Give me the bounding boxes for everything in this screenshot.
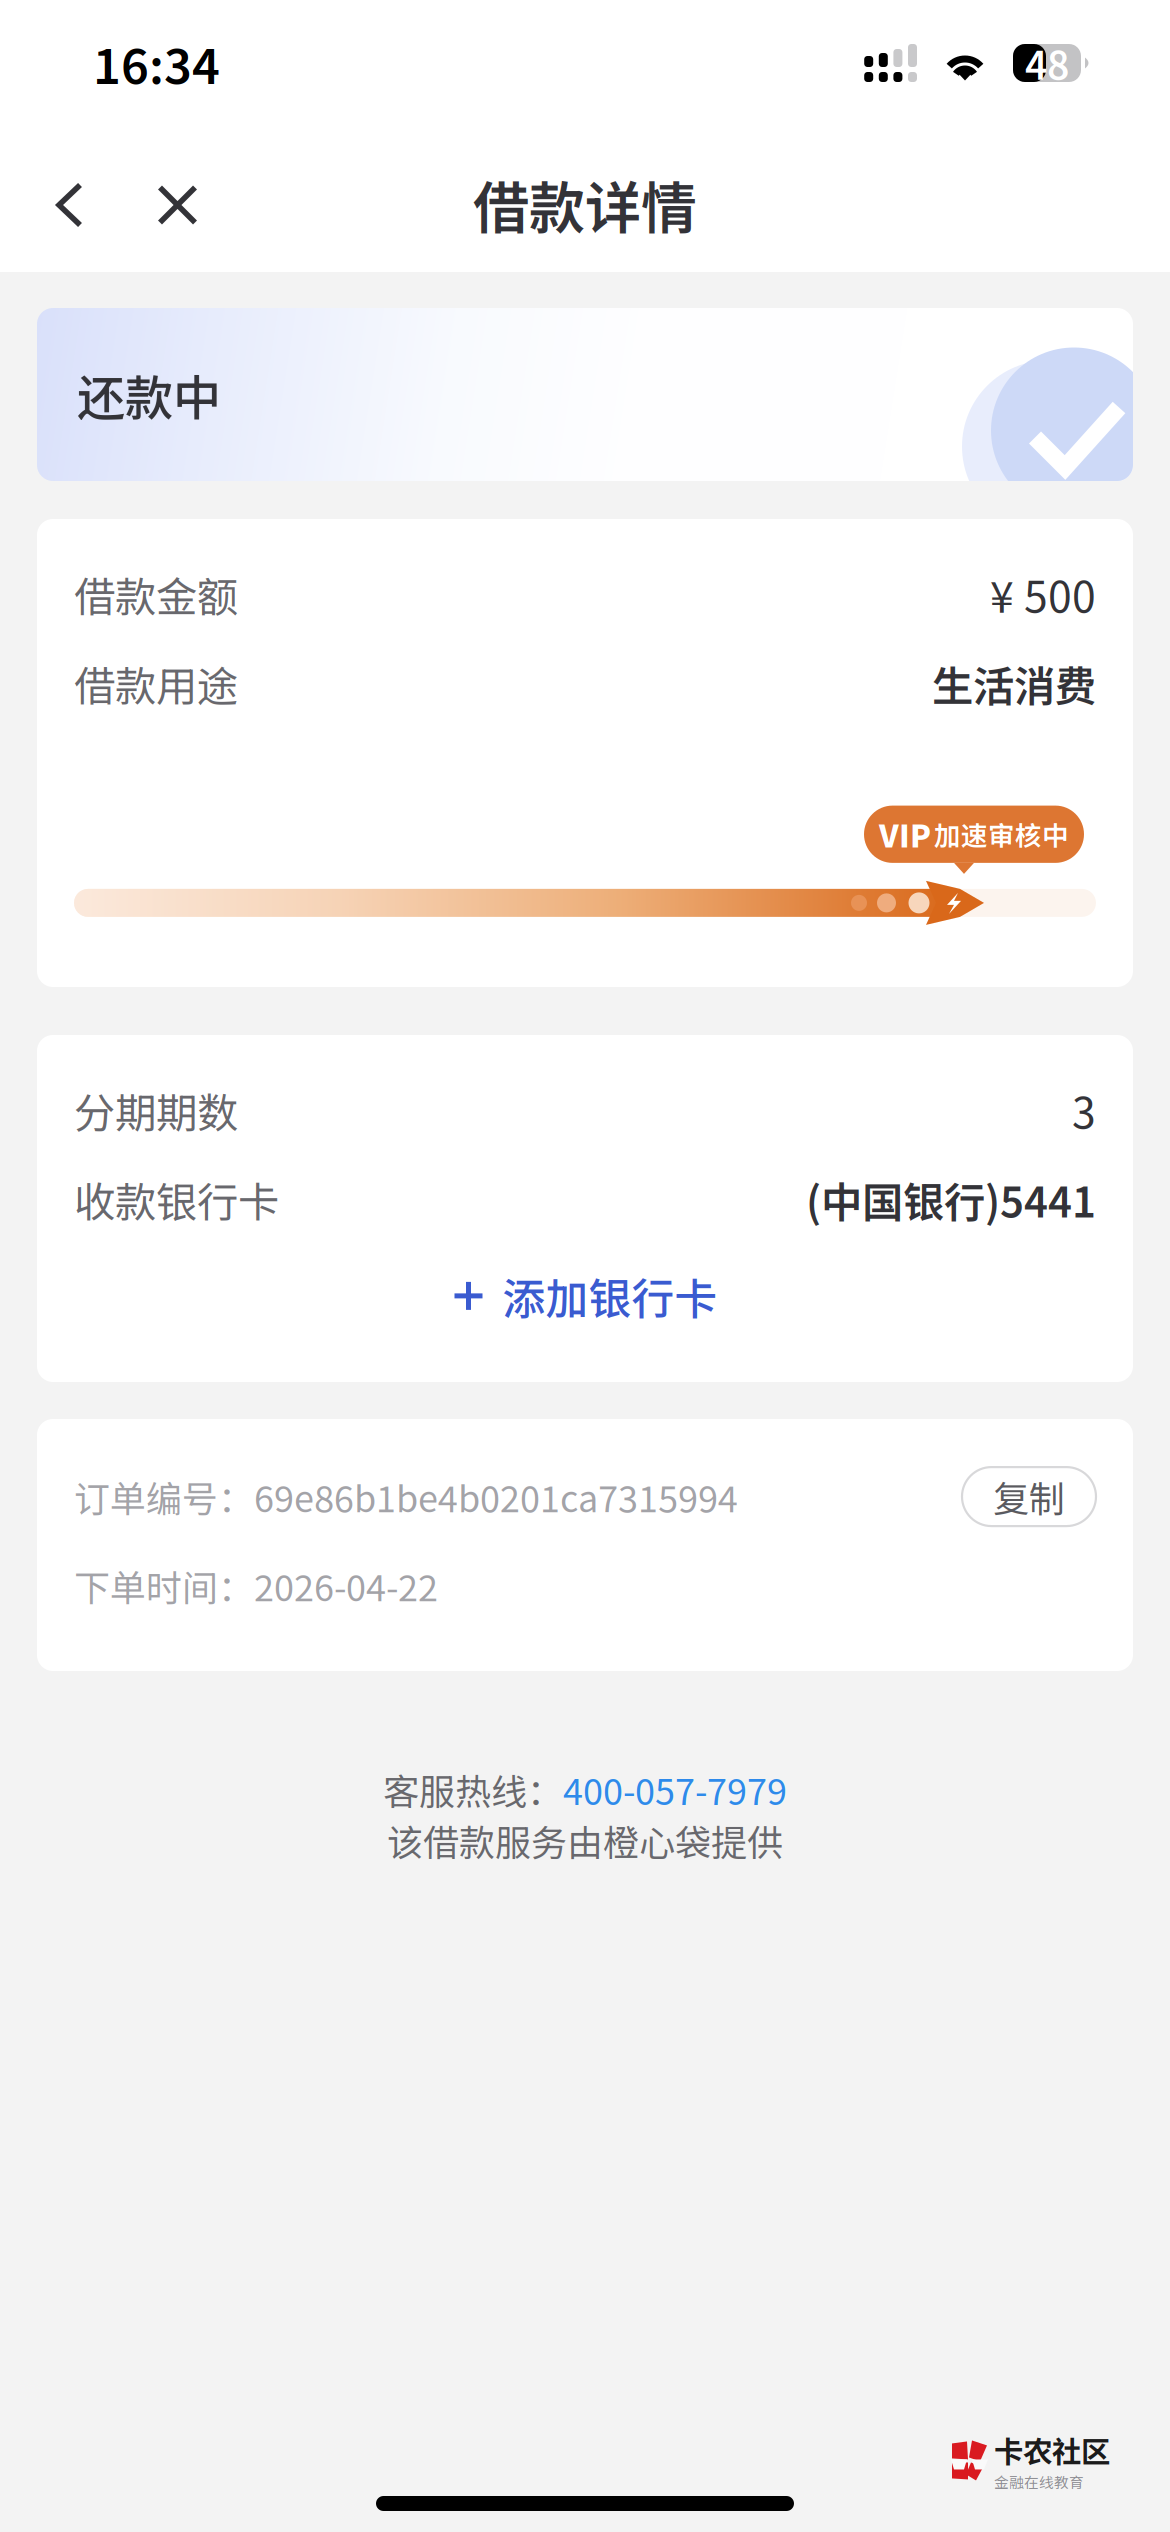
staticText: 还款中: [77, 361, 221, 428]
staticText: 生活消费: [932, 654, 1096, 713]
staticText: 借款用途: [74, 654, 238, 713]
staticText: 订单编号：69e86b1be4b0201ca7315994: [74, 1471, 738, 1522]
staticText: (中国银行)5441: [806, 1170, 1096, 1229]
button[interactable]: 关闭: [133, 139, 222, 259]
staticText: 复制: [993, 1471, 1065, 1522]
staticText: 下单时间：2026-04-22: [74, 1560, 438, 1611]
staticText: 收款银行卡: [74, 1170, 279, 1229]
button[interactable]: 返回: [28, 139, 111, 259]
staticText: 添加银行卡: [502, 1266, 717, 1326]
staticText: 借款金额: [74, 565, 238, 623]
staticText: VIP: [879, 813, 931, 856]
button[interactable]: 添加银行卡: [37, 1252, 1133, 1340]
staticText: 16:34: [93, 29, 220, 97]
staticText: ¥ 500: [990, 564, 1096, 624]
staticText: 分期期数: [74, 1081, 238, 1139]
staticText: 客服热线：: [383, 1764, 563, 1815]
staticText: 卡农社区: [994, 2429, 1110, 2470]
staticText: 400-057-7979: [563, 1764, 787, 1815]
staticText: 该借款服务由橙心袋提供: [387, 1815, 783, 1866]
button[interactable]: 复制: [962, 1467, 1096, 1526]
staticText: 金融在线教育: [994, 2471, 1084, 2492]
staticText: 借款详情: [473, 164, 697, 244]
staticText: 加速审核中: [934, 815, 1069, 853]
staticText: 3: [1072, 1080, 1096, 1140]
button[interactable]: 400-057-7979: [563, 1764, 787, 1815]
staticText: 48: [1025, 36, 1069, 90]
